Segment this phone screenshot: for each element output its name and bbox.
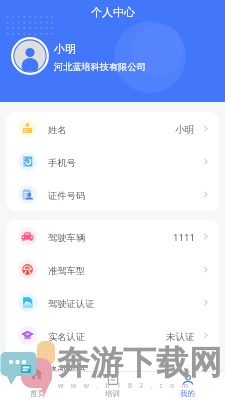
button[interactable]: 实名认证 [6,319,219,352]
staticText: 奔游下载网 [57,342,222,384]
staticText: w w w . b 1 8 2 . c o m [58,381,191,391]
staticText: 1111 [173,231,195,244]
button[interactable]: 我的 [150,372,225,400]
button[interactable]: 驾驶证认证 [6,286,219,319]
staticText: 个人中心 [91,5,135,19]
button[interactable]: 首页 [0,372,75,400]
staticText: 河北蓝培科技有限公司 [54,61,146,73]
button[interactable]: 驾驶车辆 [6,220,219,253]
staticText: 驾驶车辆 [48,232,86,244]
button[interactable]: 姓名 [6,112,219,145]
staticText: 小明 [175,124,195,136]
staticText: 培训 [105,389,120,398]
button[interactable]: 证件号码 [6,178,219,211]
button[interactable]: 手机号 [6,145,219,178]
button[interactable]: 准驾车型 [6,253,219,286]
staticText: 小明 [54,42,76,56]
staticText: 实名认证 [48,331,86,343]
staticText: 我的 [180,389,195,398]
staticText: 准驾车型 [48,265,86,277]
staticText: 证件号码 [48,190,86,202]
staticText: 首页 [30,389,45,398]
staticText: 手机号 [48,157,76,169]
button[interactable]: 修改密码 [6,352,219,385]
staticText: 姓名 [48,124,67,136]
button[interactable]: 培训 [75,372,150,400]
staticText: 修改密码 [48,364,86,376]
staticText: 驾驶证认证 [48,298,95,310]
staticText: 未认证 [166,331,195,343]
